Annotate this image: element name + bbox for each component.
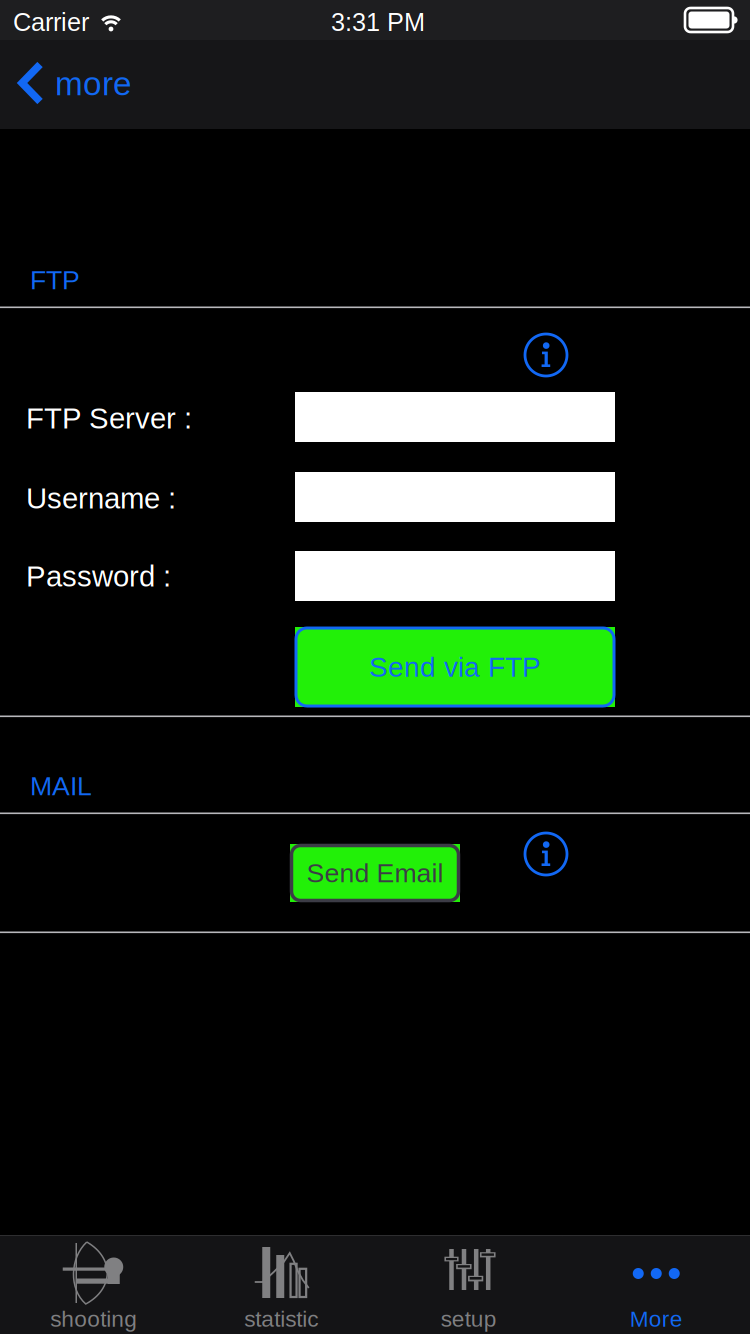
staticText: more xyxy=(55,65,132,102)
staticText: FTP Server : xyxy=(26,402,192,435)
button[interactable]: Information xyxy=(519,328,573,382)
button[interactable]: Information xyxy=(519,827,573,881)
staticText: More xyxy=(630,1306,683,1332)
staticText: FTP xyxy=(30,265,80,295)
button[interactable]: Send via FTP xyxy=(295,627,615,707)
staticText: Send Email xyxy=(306,858,443,888)
staticText: Carrier xyxy=(13,8,89,36)
button[interactable]: shooting xyxy=(0,1236,187,1334)
staticText: 3:31 PM xyxy=(331,8,425,36)
staticText: Username : xyxy=(26,482,176,515)
button[interactable]: setup xyxy=(375,1236,562,1334)
button[interactable]: Send Email xyxy=(290,844,460,902)
staticText: Send via FTP xyxy=(369,651,541,683)
staticText: Password : xyxy=(26,560,171,593)
staticText: statistic xyxy=(244,1306,318,1332)
staticText: MAIL xyxy=(30,771,92,801)
button[interactable]: statistic xyxy=(187,1236,375,1334)
button[interactable]: more xyxy=(0,53,160,117)
staticText: setup xyxy=(441,1306,497,1332)
button[interactable]: More xyxy=(562,1236,750,1334)
staticText: shooting xyxy=(50,1306,137,1332)
